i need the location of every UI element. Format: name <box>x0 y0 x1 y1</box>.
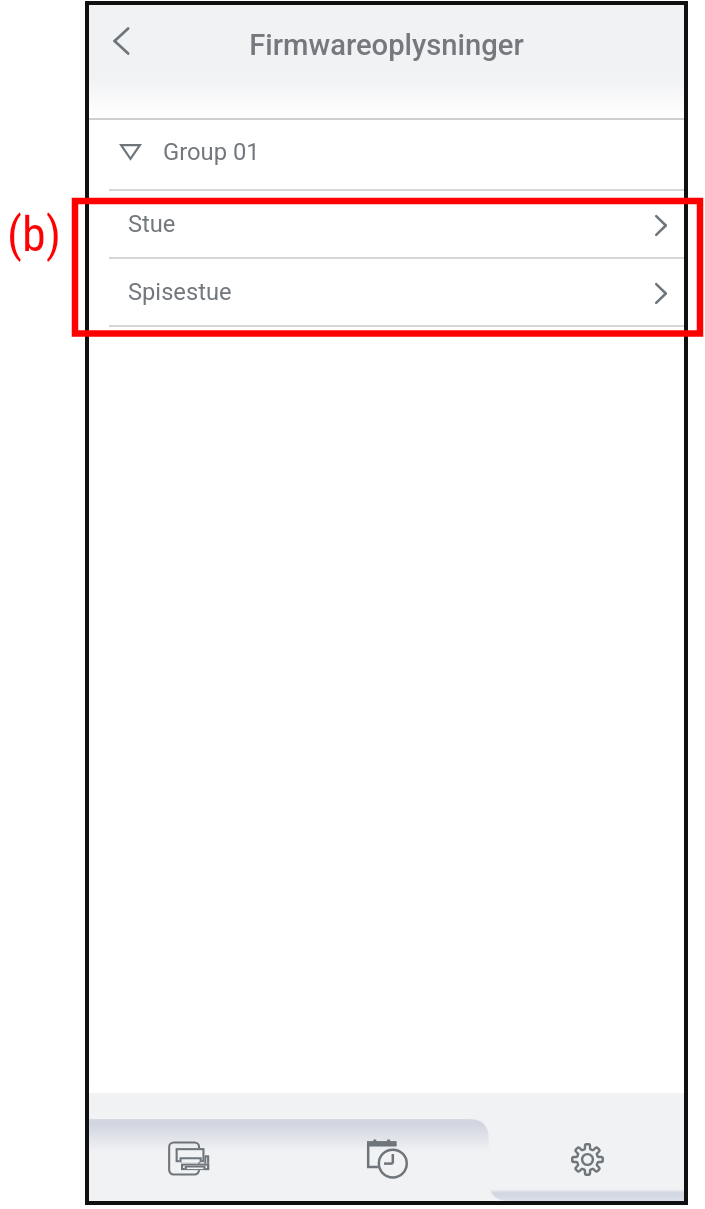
staticText: (b) <box>7 206 62 262</box>
button[interactable]: Schedule <box>288 1117 486 1201</box>
button[interactable]: Settings <box>486 1117 684 1201</box>
staticText: Firmwareoplysninger <box>89 28 684 62</box>
staticText: Spisestue <box>128 278 232 306</box>
button[interactable]: Devices <box>89 1117 288 1201</box>
button[interactable]: Spisestue <box>89 259 684 327</box>
button[interactable]: Group 01 <box>89 120 684 191</box>
staticText: Group 01 <box>163 138 260 166</box>
button[interactable]: Back <box>97 13 153 69</box>
staticText: Stue <box>128 210 176 238</box>
button[interactable]: Stue <box>89 191 684 259</box>
